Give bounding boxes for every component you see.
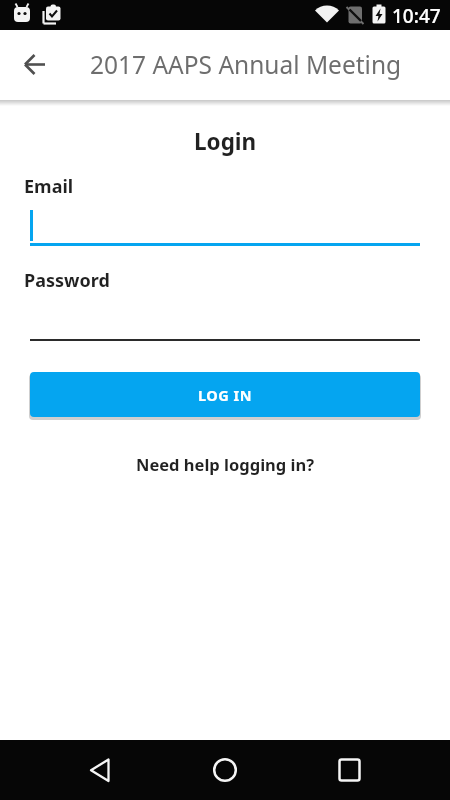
staticText: Login (194, 126, 257, 157)
staticText: Password (24, 268, 110, 293)
staticText: 10:47 (392, 3, 441, 29)
staticText: Email (24, 174, 74, 199)
button[interactable] (78, 748, 122, 792)
button[interactable] (30, 206, 420, 246)
staticText: LOG IN (198, 385, 252, 405)
button[interactable] (328, 748, 372, 792)
button[interactable]: LOG IN (30, 372, 420, 417)
button[interactable] (14, 44, 56, 86)
button[interactable]: Need help logging in? (136, 453, 315, 475)
button[interactable] (203, 748, 247, 792)
staticText: 2017 AAPS Annual Meeting (90, 48, 402, 81)
button[interactable] (30, 300, 420, 341)
staticText: Need help logging in? (136, 453, 315, 475)
